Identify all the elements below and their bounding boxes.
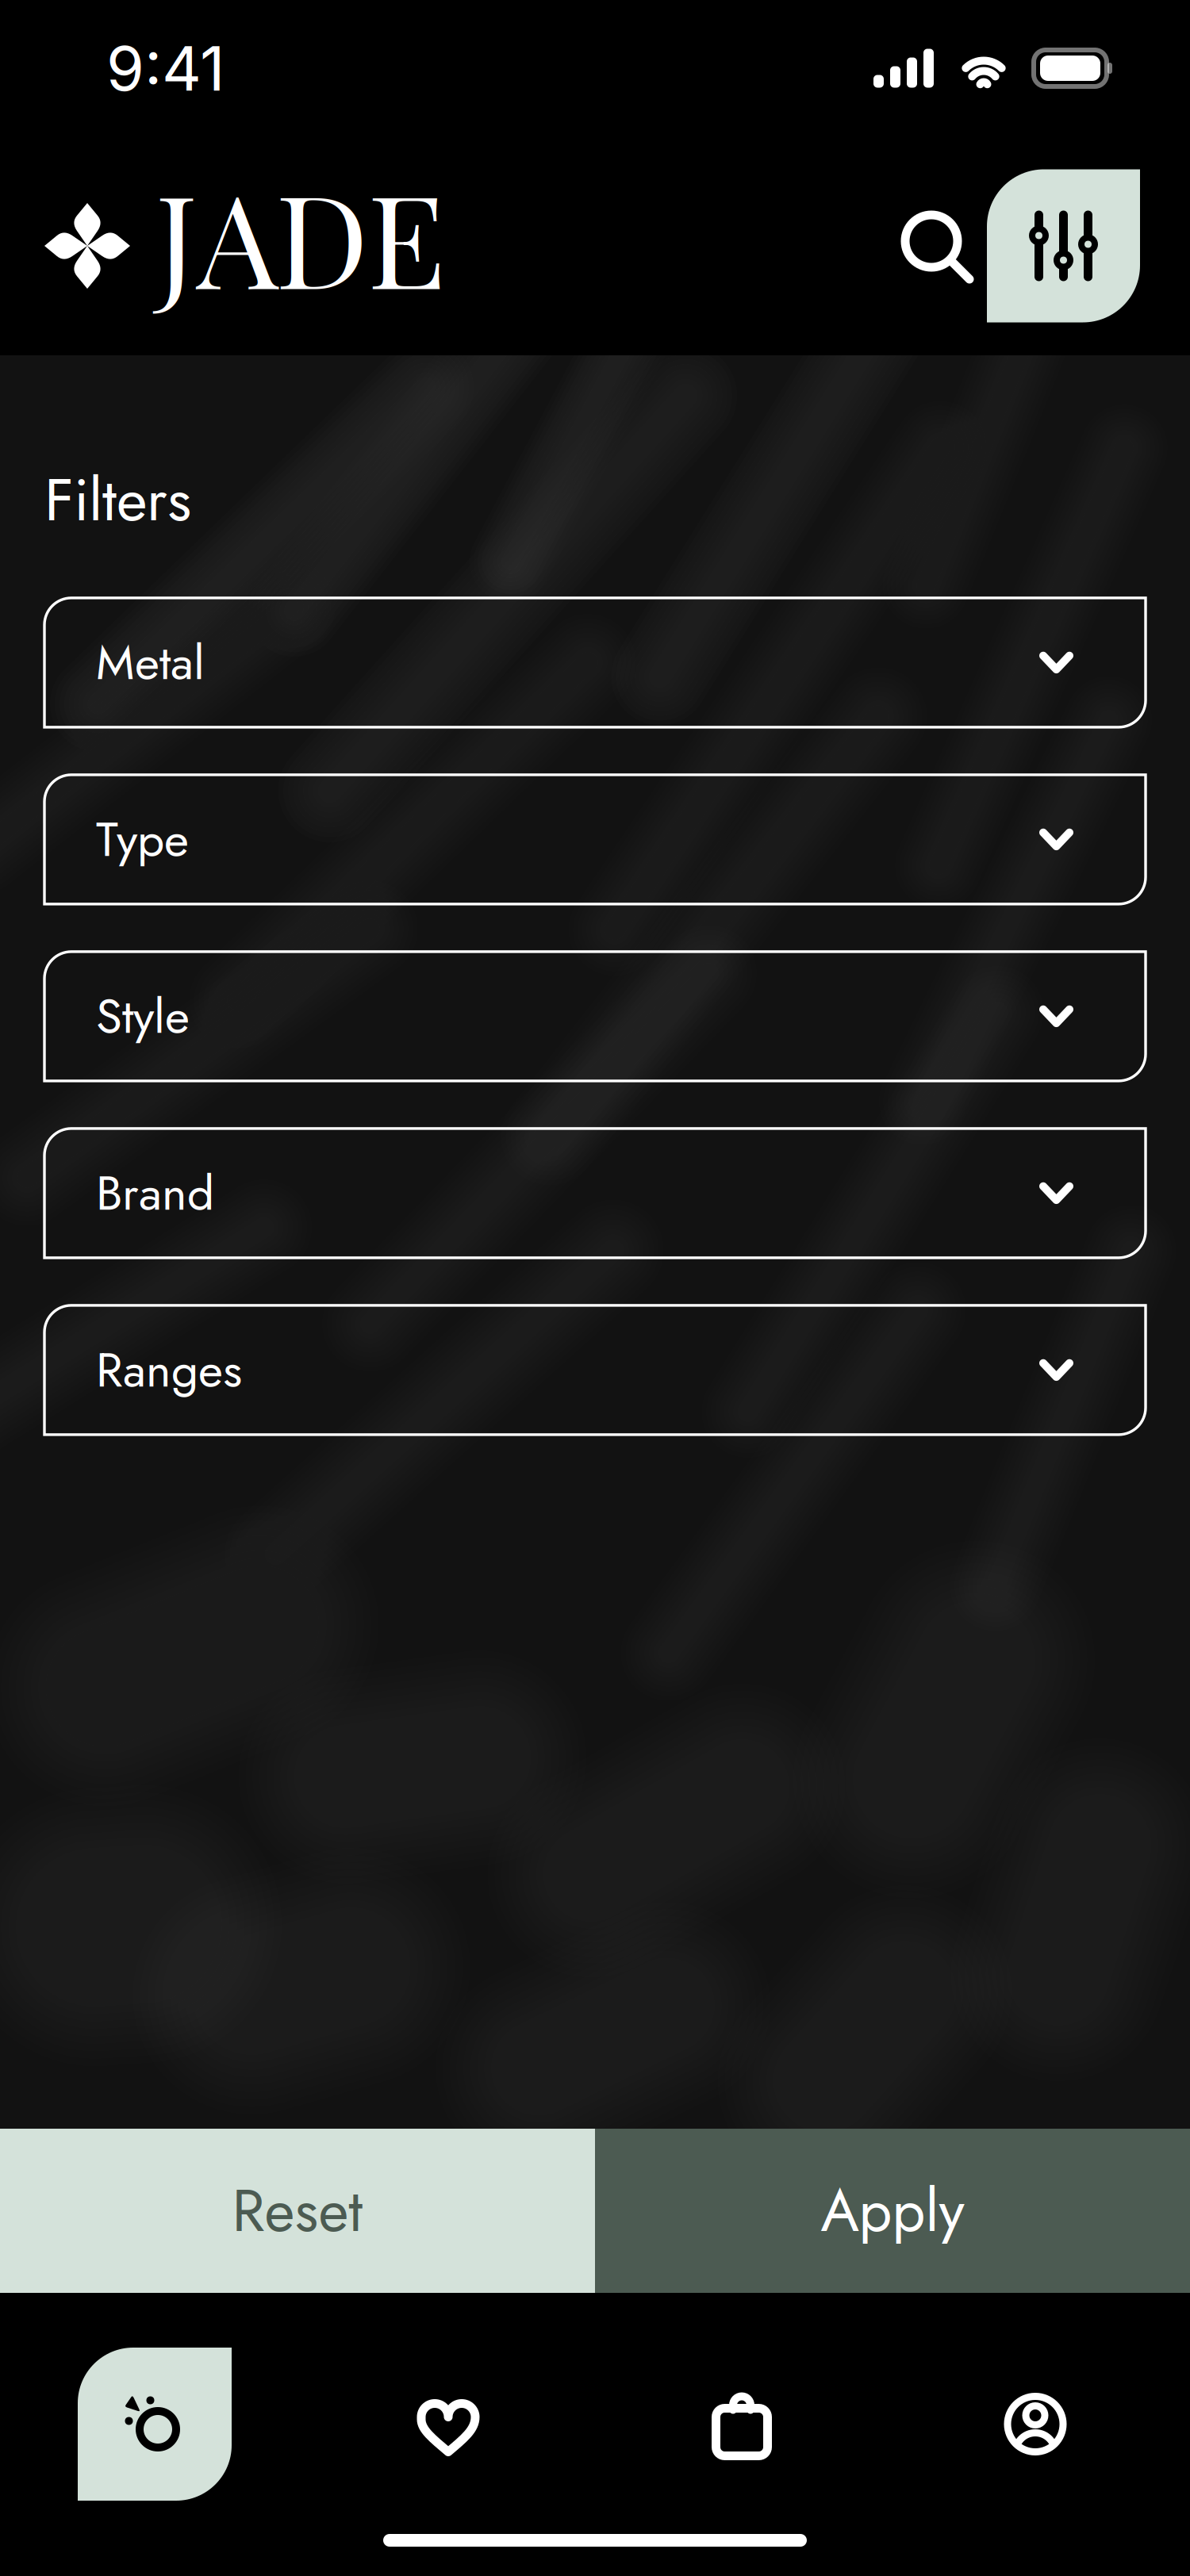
staticText: Brand <box>96 1159 214 1227</box>
staticText: Ranges <box>96 1336 242 1404</box>
button[interactable]: Filters <box>987 169 1140 322</box>
button[interactable]: Bag <box>595 2388 889 2460</box>
button[interactable]: Shop <box>8 2348 301 2501</box>
staticText: Reset <box>232 2169 363 2253</box>
staticText: JADE <box>155 150 446 322</box>
button[interactable]: Ranges <box>44 1305 1146 1435</box>
button[interactable]: Search <box>884 194 987 297</box>
staticText: Type <box>96 805 189 874</box>
staticText: Apply <box>821 2169 964 2253</box>
button[interactable]: Type <box>44 775 1146 904</box>
staticText: Filters <box>44 457 191 542</box>
staticText: 9:41 <box>106 31 225 105</box>
button[interactable]: Style <box>44 952 1146 1081</box>
staticText: Metal <box>96 628 205 697</box>
button[interactable]: Brand <box>44 1129 1146 1258</box>
button[interactable]: Favourites <box>301 2388 595 2460</box>
button[interactable]: Metal <box>44 598 1146 727</box>
button[interactable]: Reset <box>0 2129 595 2293</box>
staticText: Style <box>96 982 190 1051</box>
button[interactable]: Apply <box>595 2129 1190 2293</box>
button[interactable]: Profile <box>889 2388 1182 2460</box>
